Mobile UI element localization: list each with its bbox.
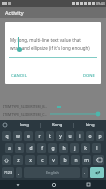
- button[interactable]: ITEMTYPE_SLIDERITEM_B...: [0, 103, 106, 110]
- button[interactable]: DONE: [81, 71, 97, 81]
- button[interactable]: long: [9, 120, 40, 130]
- button[interactable]: Delete: [93, 155, 104, 165]
- staticText: 09:43: [96, 1, 105, 6]
- staticText: DONE: [83, 73, 95, 79]
- staticText: My long, multi-line text value that shou…: [10, 37, 96, 43]
- button[interactable]: English: [24, 167, 80, 178]
- button[interactable]: j: [70, 143, 79, 153]
- staticText: w: [16, 133, 20, 140]
- button[interactable]: x: [25, 155, 35, 165]
- staticText: wrap and ellipsize (if it's long enough): [10, 45, 90, 51]
- button[interactable]: Voice input: [0, 120, 9, 130]
- button[interactable]: Home: [36, 180, 71, 189]
- button[interactable]: v: [49, 155, 58, 165]
- staticText: English: [46, 170, 59, 175]
- button[interactable]: Back: [0, 180, 36, 189]
- button[interactable]: u: [66, 131, 74, 141]
- button[interactable]: e: [24, 131, 33, 141]
- staticText: king: [86, 122, 95, 128]
- staticText: y: [59, 133, 62, 140]
- button[interactable]: y: [56, 131, 64, 141]
- staticText: n: [74, 157, 78, 164]
- staticText: d: [29, 145, 33, 152]
- staticText: Activity: [5, 9, 24, 16]
- staticText: c: [41, 157, 44, 164]
- staticText: p: [98, 133, 102, 140]
- button[interactable]: Enter: [90, 167, 104, 178]
- button[interactable]: o: [86, 131, 94, 141]
- staticText: ,: [18, 170, 20, 175]
- button[interactable]: g: [48, 143, 57, 153]
- staticText: k: [84, 145, 87, 152]
- staticText: q: [5, 133, 9, 140]
- button[interactable]: .: [82, 167, 88, 178]
- button[interactable]: king: [74, 120, 106, 130]
- button[interactable]: l: [92, 143, 101, 153]
- button[interactable]: d: [26, 143, 35, 153]
- button[interactable]: Shift: [2, 155, 11, 165]
- staticText: s: [18, 145, 21, 152]
- staticText: ?123: [4, 170, 13, 175]
- button[interactable]: q: [2, 131, 11, 141]
- button[interactable]: Recents: [71, 180, 106, 189]
- staticText: j: [74, 145, 76, 152]
- staticText: o: [88, 133, 92, 140]
- button[interactable]: i: [76, 131, 84, 141]
- staticText: u: [68, 133, 72, 140]
- button[interactable]: a: [5, 143, 13, 153]
- staticText: CANCEL: [11, 73, 27, 79]
- staticText: m: [84, 157, 89, 164]
- staticText: ITEMTYPE_SLIDERITEM_C...: [3, 112, 48, 117]
- staticText: Kong: [52, 122, 63, 128]
- staticText: l: [96, 145, 98, 152]
- button[interactable]: m: [82, 155, 91, 165]
- button[interactable]: ,: [16, 167, 22, 178]
- staticText: t: [49, 133, 51, 140]
- button[interactable]: k: [81, 143, 90, 153]
- button[interactable]: ITEMTYPE_SLIDERITEM_C...: [0, 110, 106, 118]
- button[interactable]: c: [37, 155, 47, 165]
- staticText: g: [51, 145, 55, 152]
- staticText: long: [20, 122, 29, 128]
- button[interactable]: w: [13, 131, 22, 141]
- button[interactable]: t: [46, 131, 54, 141]
- button[interactable]: CANCEL: [9, 71, 29, 81]
- staticText: .: [84, 170, 86, 175]
- staticText: e: [27, 133, 30, 140]
- button[interactable]: h: [59, 143, 68, 153]
- button[interactable]: z: [13, 155, 23, 165]
- staticText: a: [8, 145, 11, 152]
- button[interactable]: s: [15, 143, 24, 153]
- button[interactable]: ?123: [2, 167, 14, 178]
- button[interactable]: f: [37, 143, 46, 153]
- staticText: f: [41, 145, 43, 152]
- staticText: h: [62, 145, 66, 152]
- staticText: z: [17, 157, 20, 164]
- staticText: x: [29, 157, 32, 164]
- staticText: b: [63, 157, 67, 164]
- button[interactable]: n: [71, 155, 80, 165]
- staticText: v: [52, 157, 55, 164]
- staticText: r: [38, 133, 41, 140]
- staticText: ITEMTYPE_SLIDERITEM_B...: [3, 104, 48, 109]
- button[interactable]: b: [60, 155, 69, 165]
- button[interactable]: Kong: [41, 120, 73, 130]
- button[interactable]: p: [96, 131, 104, 141]
- button[interactable]: r: [35, 131, 44, 141]
- staticText: i: [79, 133, 81, 140]
